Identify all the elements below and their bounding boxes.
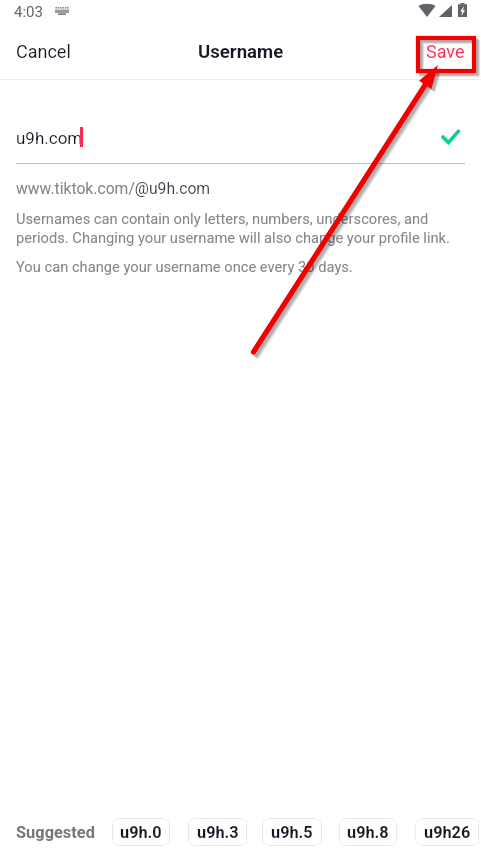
button[interactable]: Cancel	[2, 32, 85, 71]
staticText: u9h26	[424, 823, 471, 842]
staticText: u9h.5	[271, 823, 313, 842]
button[interactable]: u9h26	[415, 818, 479, 846]
other: Username available	[441, 128, 460, 146]
staticText: Usernames can contain only letters, numb…	[16, 210, 461, 247]
staticText: You can change your username once every …	[16, 258, 353, 275]
button[interactable]: u9h.3	[188, 818, 247, 846]
button[interactable]: u9h.5	[262, 818, 322, 846]
staticText: Suggested	[16, 823, 95, 842]
button[interactable]: u9h.8	[339, 818, 397, 846]
staticText: Save	[426, 41, 465, 62]
staticText: 4:03	[14, 3, 43, 21]
staticText: u9h.com	[16, 128, 83, 148]
button[interactable]: u9h.0	[112, 818, 170, 846]
staticText: u9h.0	[120, 823, 162, 842]
button[interactable]: Save	[412, 32, 479, 71]
button[interactable]: Username text field	[0, 118, 481, 158]
staticText: u9h.3	[197, 823, 239, 842]
staticText: Cancel	[16, 41, 71, 62]
staticText: www.tiktok.com/@u9h.com	[16, 179, 211, 197]
staticText: u9h.8	[347, 823, 389, 842]
staticText: Username	[198, 41, 284, 63]
